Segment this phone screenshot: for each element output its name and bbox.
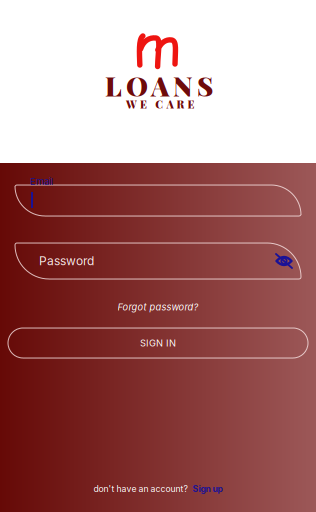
staticText: don't have an account? <box>93 483 187 494</box>
button[interactable]: SIGN IN <box>0 328 316 358</box>
staticText: SIGN IN <box>140 337 176 349</box>
button[interactable]: Email <box>0 185 316 216</box>
staticText: Email <box>30 176 53 187</box>
button[interactable]: Show password <box>268 246 300 276</box>
staticText: Forgot password? <box>117 301 198 313</box>
staticText: Password <box>39 254 94 268</box>
staticText: LOANS <box>105 68 213 103</box>
button[interactable]: Forgot password? <box>98 302 218 312</box>
button[interactable]: Sign up <box>192 483 222 494</box>
staticText: Sign up <box>192 483 222 494</box>
staticText: WE CARE <box>126 97 195 111</box>
